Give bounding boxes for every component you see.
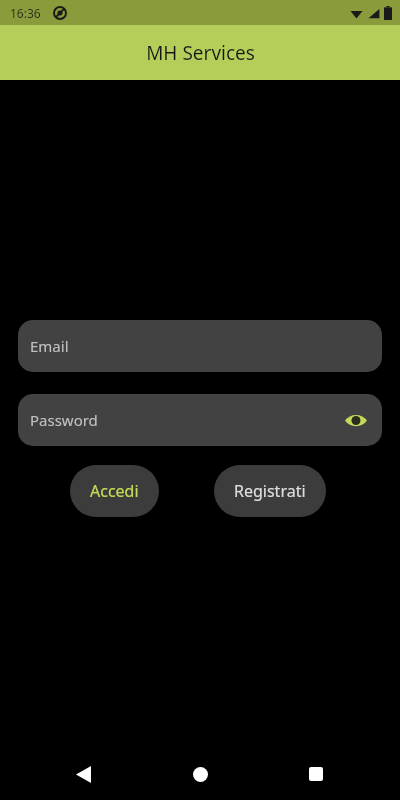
staticText: Registrati (234, 480, 306, 502)
staticText: Email (30, 336, 69, 356)
staticText: 16:36 (10, 5, 41, 21)
button[interactable]: Show password (340, 404, 372, 436)
button[interactable]: Registrati (214, 465, 326, 517)
button[interactable]: Email (18, 320, 382, 372)
button[interactable]: Home (180, 754, 220, 794)
staticText: Password (30, 410, 98, 430)
staticText: Accedi (90, 480, 139, 502)
button[interactable]: Password (18, 394, 382, 446)
staticText: MH Services (146, 40, 255, 66)
button[interactable]: Recent apps (296, 754, 336, 794)
button[interactable]: Accedi (70, 465, 159, 517)
button[interactable]: Back (63, 754, 103, 794)
